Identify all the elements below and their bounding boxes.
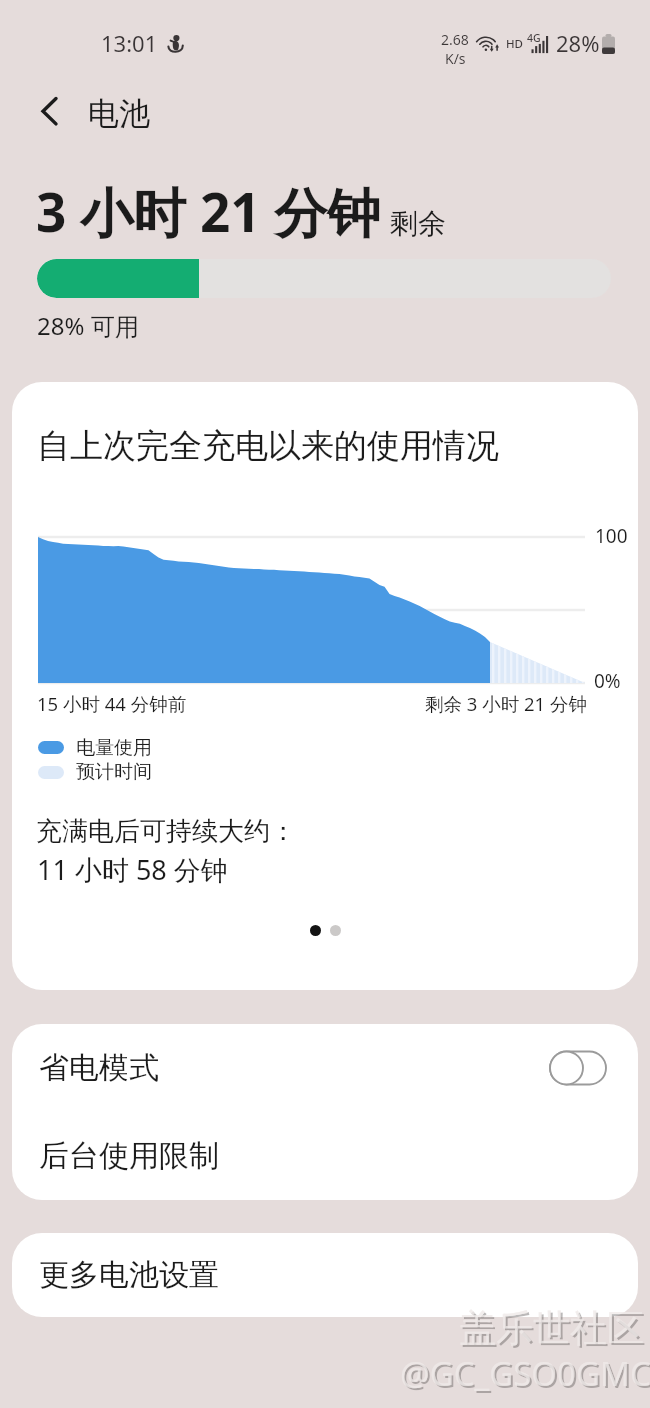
- staticText: 2.68: [441, 30, 469, 49]
- staticText: 电量使用: [76, 736, 152, 760]
- button[interactable]: 更多电池设置: [12, 1233, 638, 1317]
- staticText: 3 小时 21 分钟: [36, 175, 381, 247]
- staticText: 剩余 3 小时 21 分钟: [425, 691, 587, 716]
- staticText: 电池: [88, 94, 150, 133]
- staticText: 自上次完全充电以来的使用情况: [37, 425, 499, 467]
- staticText: 省电模式: [39, 1049, 159, 1087]
- staticText: 预计时间: [76, 760, 152, 784]
- staticText: 15 小时 44 分钟前: [37, 691, 187, 716]
- button[interactable]: 省电模式: [12, 1024, 638, 1112]
- staticText: 盖乐世社区: [461, 1307, 646, 1354]
- staticText: HD: [506, 36, 524, 52]
- staticText: @GC_GSO0GMC: [402, 1353, 650, 1398]
- staticText: K/s: [445, 49, 466, 68]
- staticText: @GC_GSO0GMC: [400, 1351, 650, 1396]
- staticText: 100: [595, 523, 628, 549]
- button[interactable]: 后台使用限制: [12, 1112, 638, 1200]
- staticText: 更多电池设置: [39, 1256, 219, 1294]
- staticText: 28%: [556, 28, 600, 58]
- staticText: 剩余: [390, 206, 446, 241]
- staticText: 充满电后可持续大约：: [36, 815, 296, 848]
- staticText: 盖乐世社区: [459, 1305, 644, 1352]
- staticText: 后台使用限制: [39, 1137, 219, 1175]
- button[interactable]: Back: [25, 87, 73, 135]
- staticText: 11 小时 58 分钟: [37, 851, 228, 888]
- staticText: 28% 可用: [37, 309, 139, 342]
- staticText: 13:01: [101, 28, 158, 58]
- staticText: 4G: [527, 31, 541, 45]
- button[interactable]: Power saving mode toggle: [548, 1050, 606, 1086]
- staticText: 0%: [594, 668, 621, 694]
